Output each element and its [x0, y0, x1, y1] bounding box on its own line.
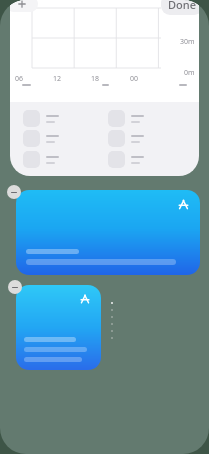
button[interactable]: [108, 130, 186, 147]
button[interactable]: Remove: [8, 280, 22, 294]
staticText: 00: [130, 74, 169, 84]
button[interactable]: [23, 110, 100, 127]
button[interactable]: [108, 110, 186, 127]
staticText: 06: [15, 74, 53, 84]
staticText: 0m: [184, 68, 195, 78]
staticText: 60m: [180, 0, 195, 8]
button[interactable]: Done: [161, 0, 199, 15]
button[interactable]: [23, 130, 100, 147]
button[interactable]: Remove: [7, 185, 21, 199]
button[interactable]: [108, 151, 186, 168]
button[interactable]: [16, 285, 101, 370]
button[interactable]: Add: [10, 0, 38, 12]
button[interactable]: Oct 05: [10, 0, 199, 176]
staticText: 12: [53, 74, 91, 84]
button[interactable]: [16, 190, 200, 275]
staticText: 30m: [180, 37, 195, 47]
button[interactable]: [23, 151, 100, 168]
staticText: 18: [91, 74, 130, 84]
staticText: Done: [168, 0, 196, 12]
